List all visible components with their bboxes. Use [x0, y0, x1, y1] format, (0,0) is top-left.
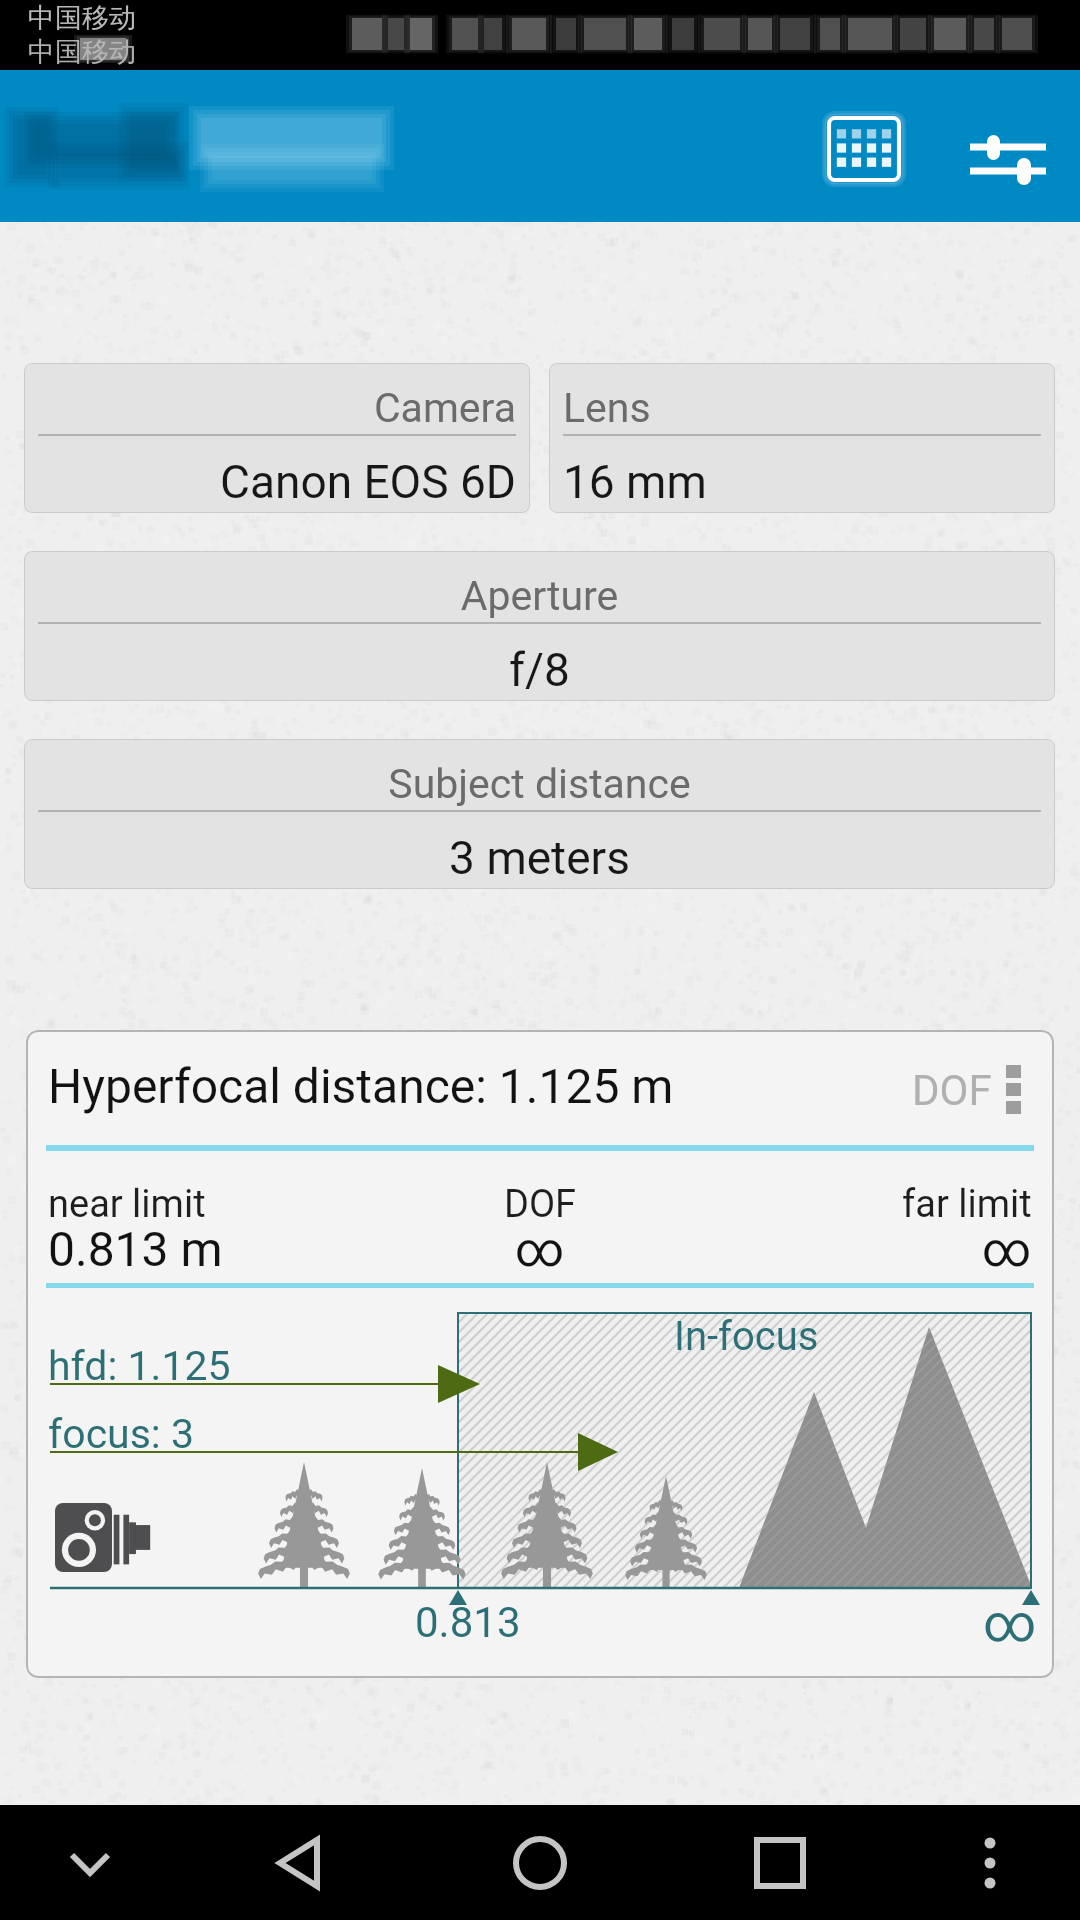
staticText: 0.813 m — [48, 1221, 223, 1277]
staticText: 16 mm — [563, 455, 1041, 509]
staticText: In-focus — [674, 1313, 819, 1360]
staticText: Lens — [563, 384, 1041, 432]
staticText: hfd: 1.125 — [48, 1342, 231, 1390]
staticText: Canon EOS 6D — [38, 455, 516, 509]
button[interactable]: Settings — [948, 88, 1068, 204]
staticText: 3 meters — [38, 831, 1041, 885]
button[interactable]: Lens — [549, 363, 1055, 513]
button[interactable]: Hide keyboard — [35, 1805, 145, 1920]
staticText: far limit — [902, 1182, 1032, 1227]
staticText: 0.813 — [415, 1598, 521, 1647]
staticText: near limit — [48, 1182, 206, 1227]
button[interactable]: More options — [988, 1050, 1048, 1130]
staticText: focus: 3 — [48, 1410, 195, 1458]
staticText: ∞ — [515, 1221, 565, 1277]
button[interactable]: Menu — [935, 1805, 1045, 1920]
staticText: DOF — [504, 1182, 577, 1227]
staticText: ∞ — [982, 1221, 1032, 1277]
staticText: 中国移动 — [28, 35, 136, 69]
staticText: Aperture — [38, 572, 1041, 620]
button[interactable]: Back — [247, 1805, 357, 1920]
button[interactable]: Subject distance — [24, 739, 1055, 889]
staticText: Subject distance — [38, 760, 1041, 808]
staticText: ∞ — [983, 1593, 1037, 1654]
staticText: 中国移动 — [28, 1, 136, 35]
button[interactable]: Aperture — [24, 551, 1055, 701]
staticText: Camera — [38, 384, 516, 432]
staticText: DOF — [912, 1066, 992, 1115]
button[interactable]: Camera — [24, 363, 530, 513]
staticText: f/8 — [38, 643, 1041, 697]
button[interactable]: Recents — [725, 1805, 835, 1920]
staticText: Hyperfocal distance: 1.125 m — [48, 1058, 674, 1114]
button[interactable]: Keypad — [805, 95, 923, 203]
button[interactable]: Home — [485, 1805, 595, 1920]
